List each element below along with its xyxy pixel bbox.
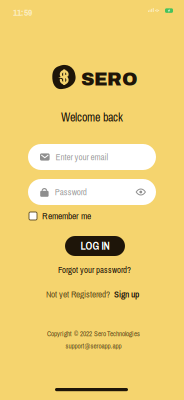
staticText: Password [55,186,87,198]
staticText: support@seroapp.app [65,341,121,351]
staticText: Enter your email [56,151,109,163]
staticText: Forgot your password? [58,264,131,276]
staticText: 11:59 [13,6,32,19]
button[interactable]: Password [28,179,156,205]
staticText: Remember me [42,210,91,222]
button[interactable]: Sign up [114,288,139,300]
button[interactable]: Enter your email [28,144,156,170]
staticText: Welcome back [61,109,123,125]
staticText: Not yet Registered? [46,288,110,300]
staticText: LOG IN [80,239,109,253]
staticText: Sign up [114,288,139,300]
staticText: Copyright © 2022 Sero Technologies [47,329,140,338]
staticText: SERO [81,69,138,89]
button[interactable]: Forgot your password? [58,264,131,276]
button[interactable]: Remember me [29,210,129,222]
button[interactable]: LOG IN [65,236,125,256]
